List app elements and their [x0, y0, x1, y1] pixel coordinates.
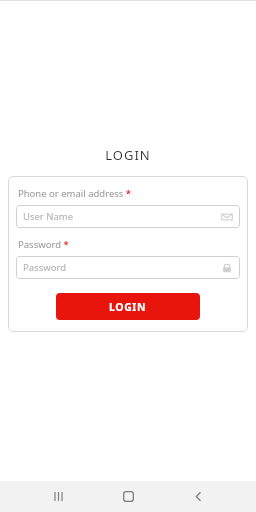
button[interactable]: Recent apps — [30, 481, 86, 512]
staticText: LOGIN — [0, 146, 256, 164]
staticText: User Name — [23, 210, 221, 223]
button[interactable]: Home — [100, 481, 156, 512]
button[interactable]: User Name — [16, 205, 240, 228]
staticText: Password — [23, 261, 221, 274]
staticText: Phone or email address * — [18, 187, 131, 200]
staticText: Password * — [18, 238, 69, 251]
staticText: LOGIN — [109, 300, 147, 314]
button[interactable]: Back — [170, 481, 226, 512]
button[interactable]: Password — [16, 256, 240, 279]
button[interactable]: LOGIN — [56, 293, 200, 320]
